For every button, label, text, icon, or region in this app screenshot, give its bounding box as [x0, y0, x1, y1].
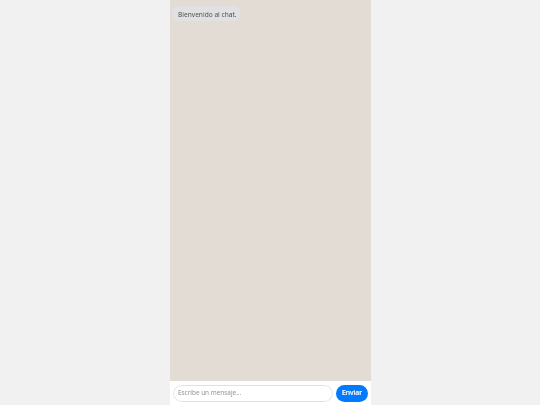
- staticText: Bienvenido al chat.: [178, 10, 237, 19]
- staticText: Escribe un mensaje...: [178, 388, 242, 397]
- button[interactable]: Escribe un mensaje...: [173, 385, 333, 402]
- staticText: Enviar: [342, 388, 363, 397]
- button[interactable]: Bienvenido al chat.: [172, 6, 240, 21]
- button[interactable]: Enviar mensaje: [336, 385, 368, 402]
